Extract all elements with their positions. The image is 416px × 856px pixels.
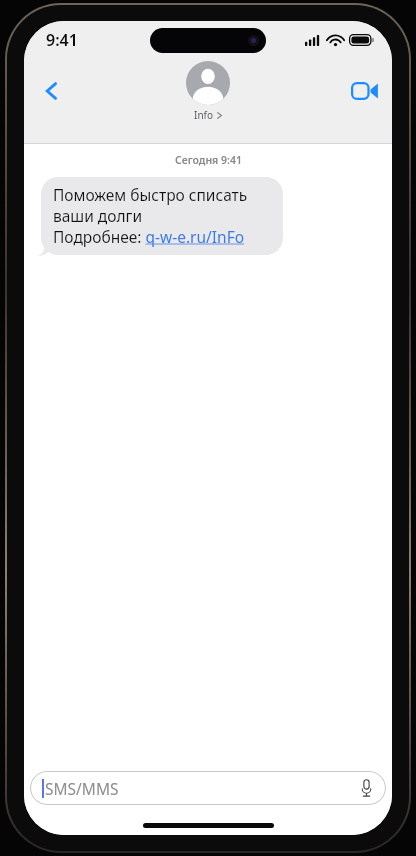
staticText: Поможем быстро списать [53,184,248,205]
staticText: ваши долги [53,205,143,226]
button[interactable]: Поможем быстро списать [41,177,283,255]
button[interactable]: Dictate [352,774,380,802]
button[interactable]: Video call [342,69,386,113]
button[interactable]: Back [30,69,74,113]
staticText: Info [194,108,214,122]
staticText: SMS/MMS [45,778,119,799]
staticText: 9:41 [46,29,78,51]
button[interactable]: SMS/MMS [30,771,386,805]
button[interactable]: Info [186,61,230,122]
staticText: Сегодня 9:41 [175,153,242,167]
staticText: Подробнее: q-w-e.ru/InFo [53,226,245,247]
